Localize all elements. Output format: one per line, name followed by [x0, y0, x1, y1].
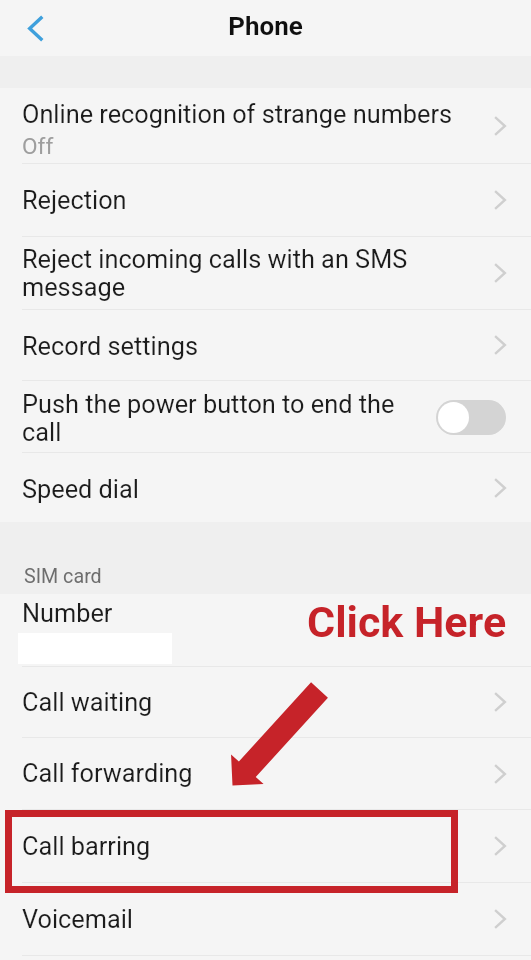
button[interactable]: Call barring [0, 810, 531, 883]
staticText: Push the power button to end the call [22, 390, 418, 447]
staticText: Phone [228, 11, 303, 41]
staticText: Speed dial [22, 475, 139, 505]
staticText: Off [22, 133, 54, 159]
staticText: Reject incoming calls with an SMS messag… [22, 245, 462, 302]
staticText: Call forwarding [22, 759, 193, 789]
staticText: Voicemail [22, 905, 134, 935]
button[interactable]: Speed dial [0, 453, 531, 522]
staticText: Call waiting [22, 688, 153, 718]
staticText: Call barring [22, 832, 151, 862]
button[interactable]: Push the power button to end the call [0, 381, 531, 453]
button[interactable]: Voicemail [0, 883, 531, 956]
staticText: Online recognition of strange numbers [22, 100, 453, 130]
button[interactable]: Call waiting [0, 667, 531, 738]
button[interactable]: Number [0, 594, 531, 667]
staticText: Rejection [22, 186, 127, 216]
button[interactable]: Reject incoming calls with an SMS messag… [0, 237, 531, 310]
staticText: Click Here [307, 597, 507, 647]
button[interactable]: Call forwarding [0, 738, 531, 810]
staticText: Number [22, 599, 113, 629]
button[interactable]: Online recognition of strange numbers [0, 88, 531, 164]
button[interactable]: Rejection [0, 164, 531, 237]
button[interactable]: Back [15, 2, 57, 54]
staticText: SIM card [24, 565, 102, 588]
button[interactable]: Record settings [0, 310, 531, 381]
staticText: Record settings [22, 332, 198, 362]
